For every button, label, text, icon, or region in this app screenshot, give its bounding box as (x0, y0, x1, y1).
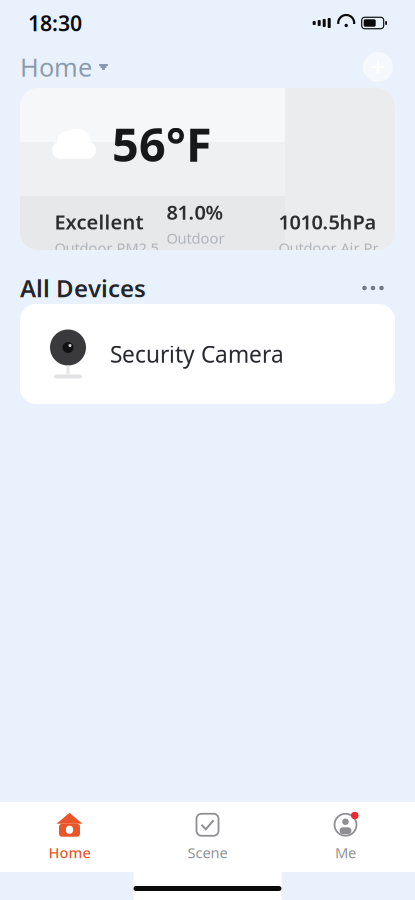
staticText: All Devices (20, 272, 146, 304)
staticText: Outdoor Humid... (166, 228, 225, 267)
button[interactable]: Home (0, 806, 138, 868)
staticText: Home (20, 50, 92, 84)
button[interactable]: Add device (361, 50, 395, 84)
staticText: 1010.5hPa (278, 208, 376, 235)
staticText: Outdoor PM2.5 (54, 238, 158, 257)
staticText: 81.0% (166, 199, 223, 225)
button[interactable]: Home (20, 44, 108, 90)
button[interactable]: 56°F (20, 88, 395, 250)
button[interactable]: Security Camera (20, 304, 395, 404)
staticText: 18:30 (28, 9, 82, 37)
staticText: Security Camera (110, 339, 284, 369)
staticText: 56°F (112, 113, 212, 175)
staticText: Excellent (54, 208, 143, 235)
staticText: Home (48, 843, 90, 862)
button[interactable]: Scene (138, 806, 276, 868)
button[interactable]: More options (351, 272, 395, 304)
staticText: Scene (187, 843, 227, 862)
staticText: Outdoor Air Pr... (278, 238, 388, 257)
button[interactable]: Me (276, 806, 414, 868)
staticText: Me (335, 843, 356, 862)
